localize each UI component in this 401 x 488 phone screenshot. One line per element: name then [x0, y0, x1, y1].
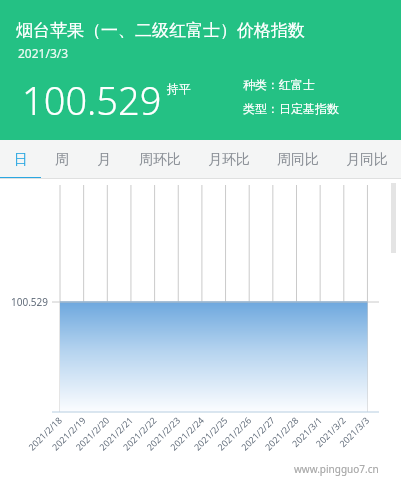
staticText: 2021/3/3 [18, 45, 69, 61]
staticText: 月同比 [346, 151, 388, 169]
staticText: 周同比 [277, 151, 319, 169]
staticText: 种类：红富士 [243, 77, 315, 92]
button[interactable]: 月 [83, 140, 125, 179]
button[interactable]: 周同比 [263, 140, 332, 179]
button[interactable]: 日 [0, 140, 41, 179]
staticText: 100.529 [22, 74, 162, 126]
button[interactable]: 周 [41, 140, 83, 179]
staticText: 月 [97, 151, 111, 169]
staticText: 周环比 [139, 151, 181, 169]
button[interactable]: 月同比 [332, 140, 401, 179]
button[interactable]: 周环比 [125, 140, 194, 179]
staticText: 日 [14, 151, 28, 169]
staticText: 烟台苹果（一、二级红富士）价格指数 [16, 20, 305, 41]
staticText: 类型：日定基指数 [243, 101, 339, 116]
staticText: 月环比 [208, 151, 250, 169]
staticText: 持平 [167, 81, 191, 96]
staticText: 周 [55, 151, 69, 169]
button[interactable]: 月环比 [194, 140, 263, 179]
